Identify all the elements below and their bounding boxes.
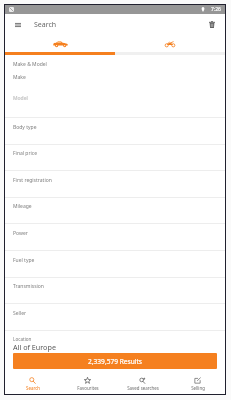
staticText: Search <box>26 385 40 391</box>
staticText: Seller <box>13 310 27 317</box>
button[interactable]: Seller <box>5 304 225 331</box>
staticText: Fuel type <box>13 257 35 264</box>
button[interactable]: Final price <box>5 144 225 171</box>
button[interactable]: Transmission <box>5 277 225 304</box>
staticText: All of Europe <box>13 342 56 352</box>
button[interactable]: Selling <box>170 374 225 394</box>
button[interactable]: Delete search <box>198 14 225 35</box>
button[interactable]: Favourites <box>60 374 115 394</box>
staticText: Transmission <box>13 283 44 290</box>
button[interactable]: Make & Model <box>5 55 225 118</box>
staticText: Search <box>34 20 57 30</box>
staticText: 7:26 <box>211 6 221 13</box>
staticText: Mileage <box>13 203 32 210</box>
button[interactable]: First registration <box>5 171 225 198</box>
staticText: Favourites <box>77 385 99 391</box>
button[interactable]: Search <box>5 374 60 394</box>
staticText: Location <box>13 336 32 342</box>
button[interactable]: 2,339,579 Results <box>13 353 217 369</box>
staticText: Saved searches <box>127 385 159 391</box>
button[interactable]: Saved searches <box>115 374 170 394</box>
staticText: Selling <box>191 385 205 391</box>
button[interactable]: Motorbikes tab <box>115 35 225 52</box>
staticText: Model <box>13 95 28 102</box>
button[interactable]: Fuel type <box>5 251 225 278</box>
staticText: First registration <box>13 177 52 184</box>
button[interactable]: Cars tab <box>5 35 115 52</box>
button[interactable]: Mileage <box>5 197 225 224</box>
button[interactable]: Open navigation menu <box>5 14 31 35</box>
button[interactable]: Body type <box>5 118 225 145</box>
button[interactable]: Location <box>5 330 225 352</box>
staticText: Final price <box>13 150 38 157</box>
staticText: 2,339,579 Results <box>88 357 142 366</box>
button[interactable]: Power <box>5 224 225 251</box>
staticText: Body type <box>13 124 37 131</box>
staticText: Power <box>13 230 28 237</box>
staticText: Make <box>13 74 26 81</box>
staticText: Make & Model <box>13 61 47 68</box>
